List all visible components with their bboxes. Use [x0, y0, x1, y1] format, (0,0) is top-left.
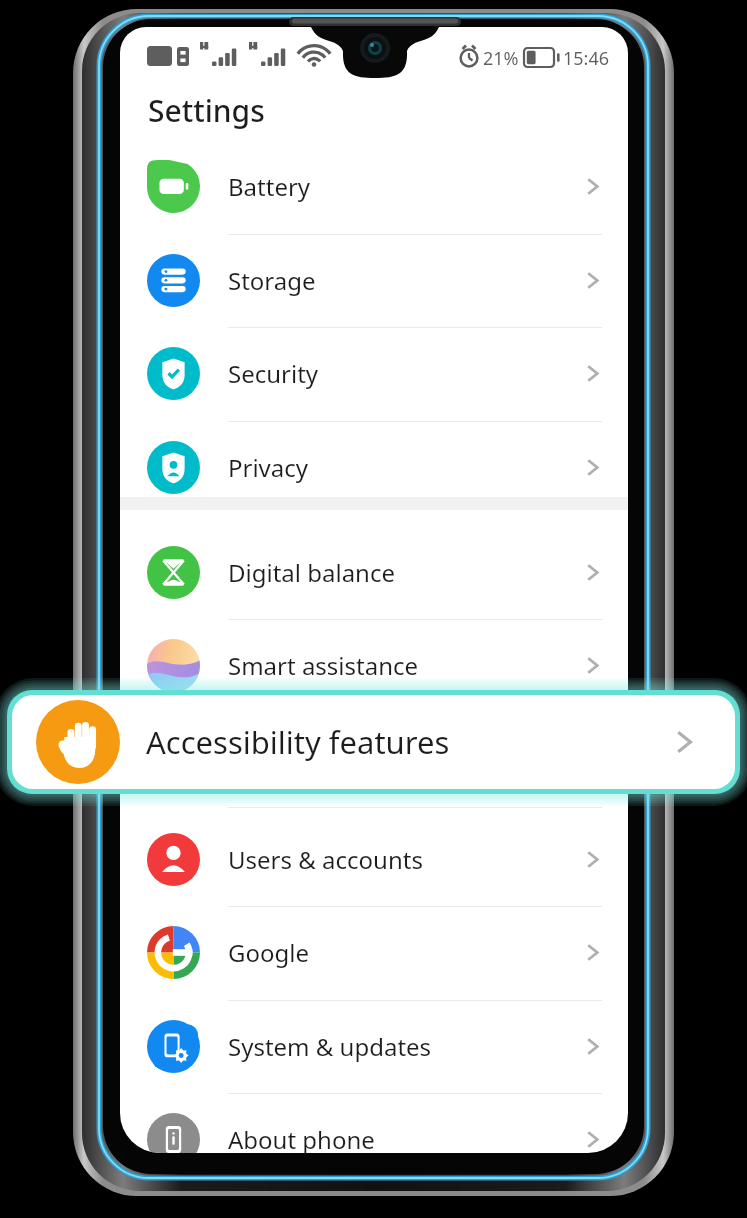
staticText: Google — [228, 936, 309, 969]
staticText: Privacy — [228, 451, 309, 484]
staticText: Battery — [228, 170, 311, 203]
button[interactable]: Storage — [120, 234, 628, 327]
button[interactable]: Google — [120, 906, 628, 999]
staticText: About phone — [228, 1123, 375, 1153]
other: Open Accessibility features — [667, 725, 701, 759]
button[interactable]: System & updates — [120, 1000, 628, 1093]
button[interactable]: Users & accounts — [120, 813, 628, 906]
button[interactable]: Security — [120, 327, 628, 420]
staticText: System & updates — [228, 1030, 432, 1063]
staticText: 21% — [483, 46, 519, 71]
button[interactable]: Accessibility features — [12, 695, 735, 789]
button[interactable]: Smart assistance — [120, 619, 628, 712]
button[interactable]: Battery — [120, 140, 628, 233]
button[interactable]: About phone — [120, 1093, 628, 1153]
button[interactable]: Digital balance — [120, 526, 628, 619]
staticText: Storage — [228, 264, 316, 297]
staticText: Digital balance — [228, 556, 395, 589]
staticText: Smart assistance — [228, 649, 419, 682]
staticText: Security — [228, 357, 319, 390]
staticText: Users & accounts — [228, 843, 423, 876]
button[interactable]: Privacy — [120, 421, 628, 514]
staticText: 15:46 — [563, 46, 610, 71]
staticText: Settings — [148, 90, 265, 131]
staticText: Accessibility features — [146, 721, 450, 763]
